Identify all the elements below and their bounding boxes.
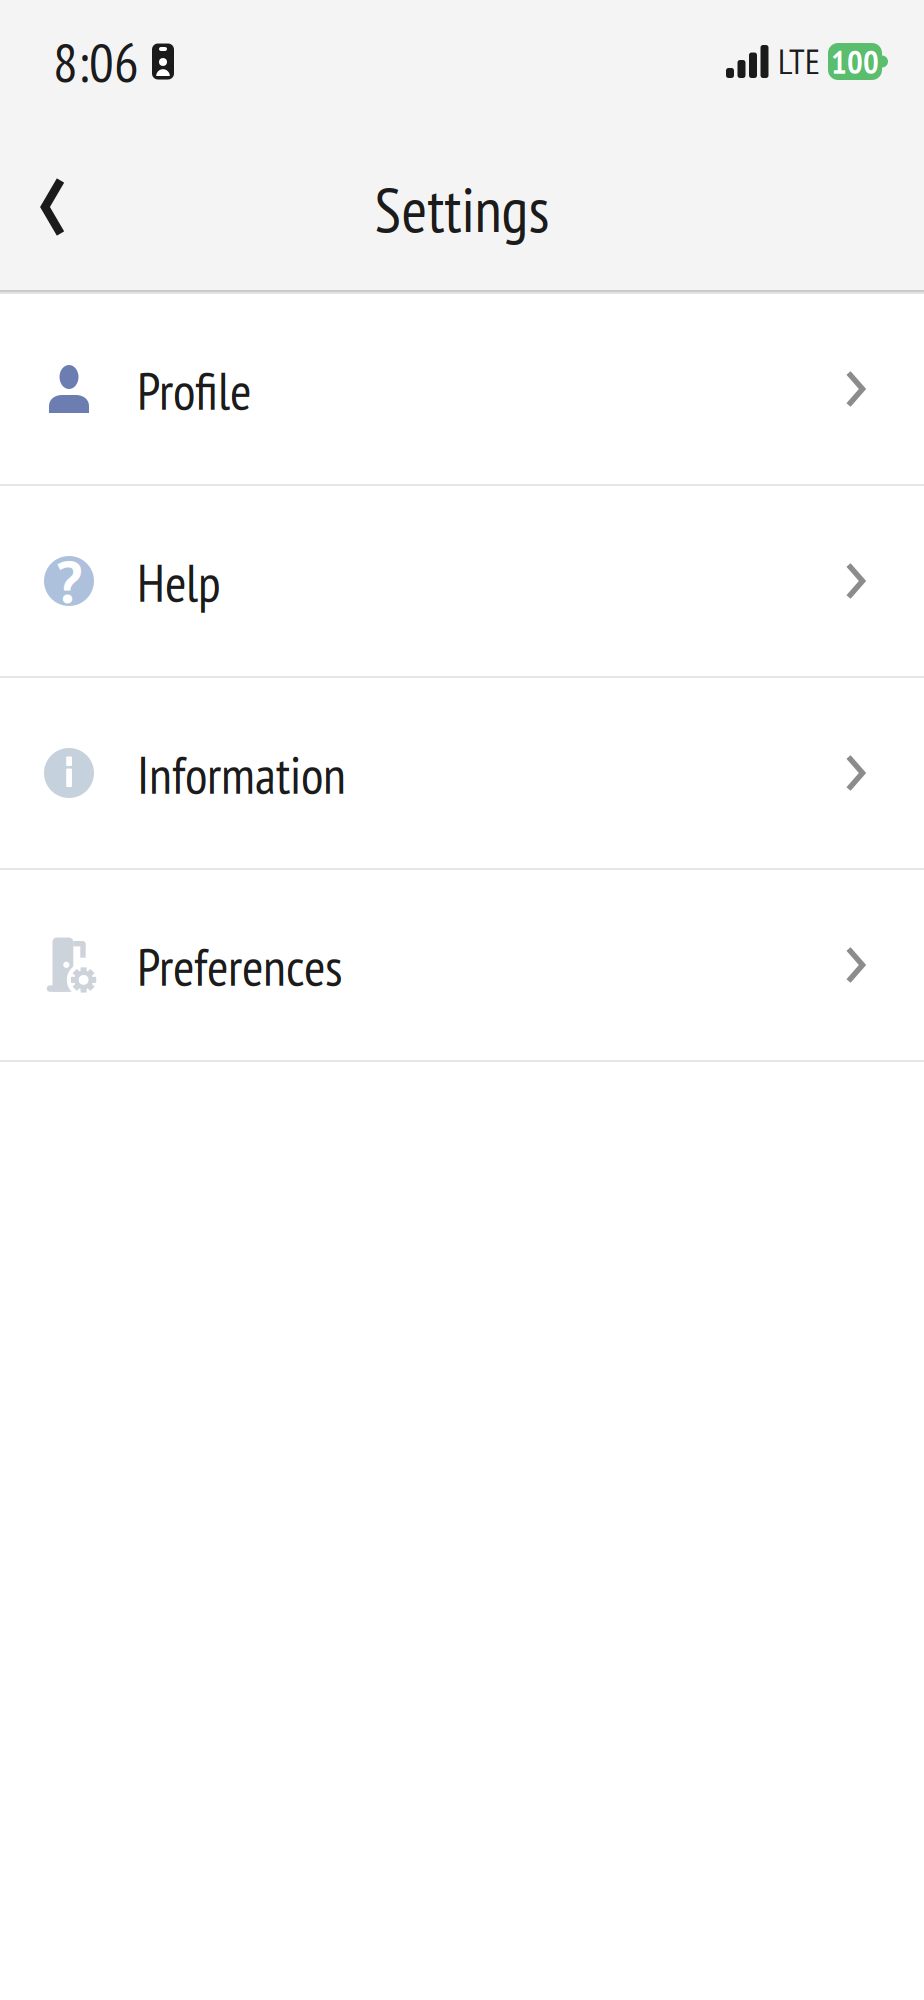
staticText: ? [56, 543, 82, 619]
staticText: Information [137, 741, 346, 808]
staticText: 8:06 [53, 26, 139, 97]
staticText: Help [137, 549, 221, 616]
button[interactable]: Back [0, 178, 68, 235]
button[interactable]: Information [0, 678, 924, 868]
button[interactable]: Profile [0, 294, 924, 484]
button[interactable]: ? [0, 486, 924, 676]
staticText: Profile [137, 357, 251, 424]
staticText: Preferences [137, 933, 343, 1000]
staticText: LTE [778, 39, 820, 84]
staticText: 100 [831, 40, 879, 83]
staticText: Settings [374, 169, 549, 249]
button[interactable]: Preferences [0, 870, 924, 1060]
